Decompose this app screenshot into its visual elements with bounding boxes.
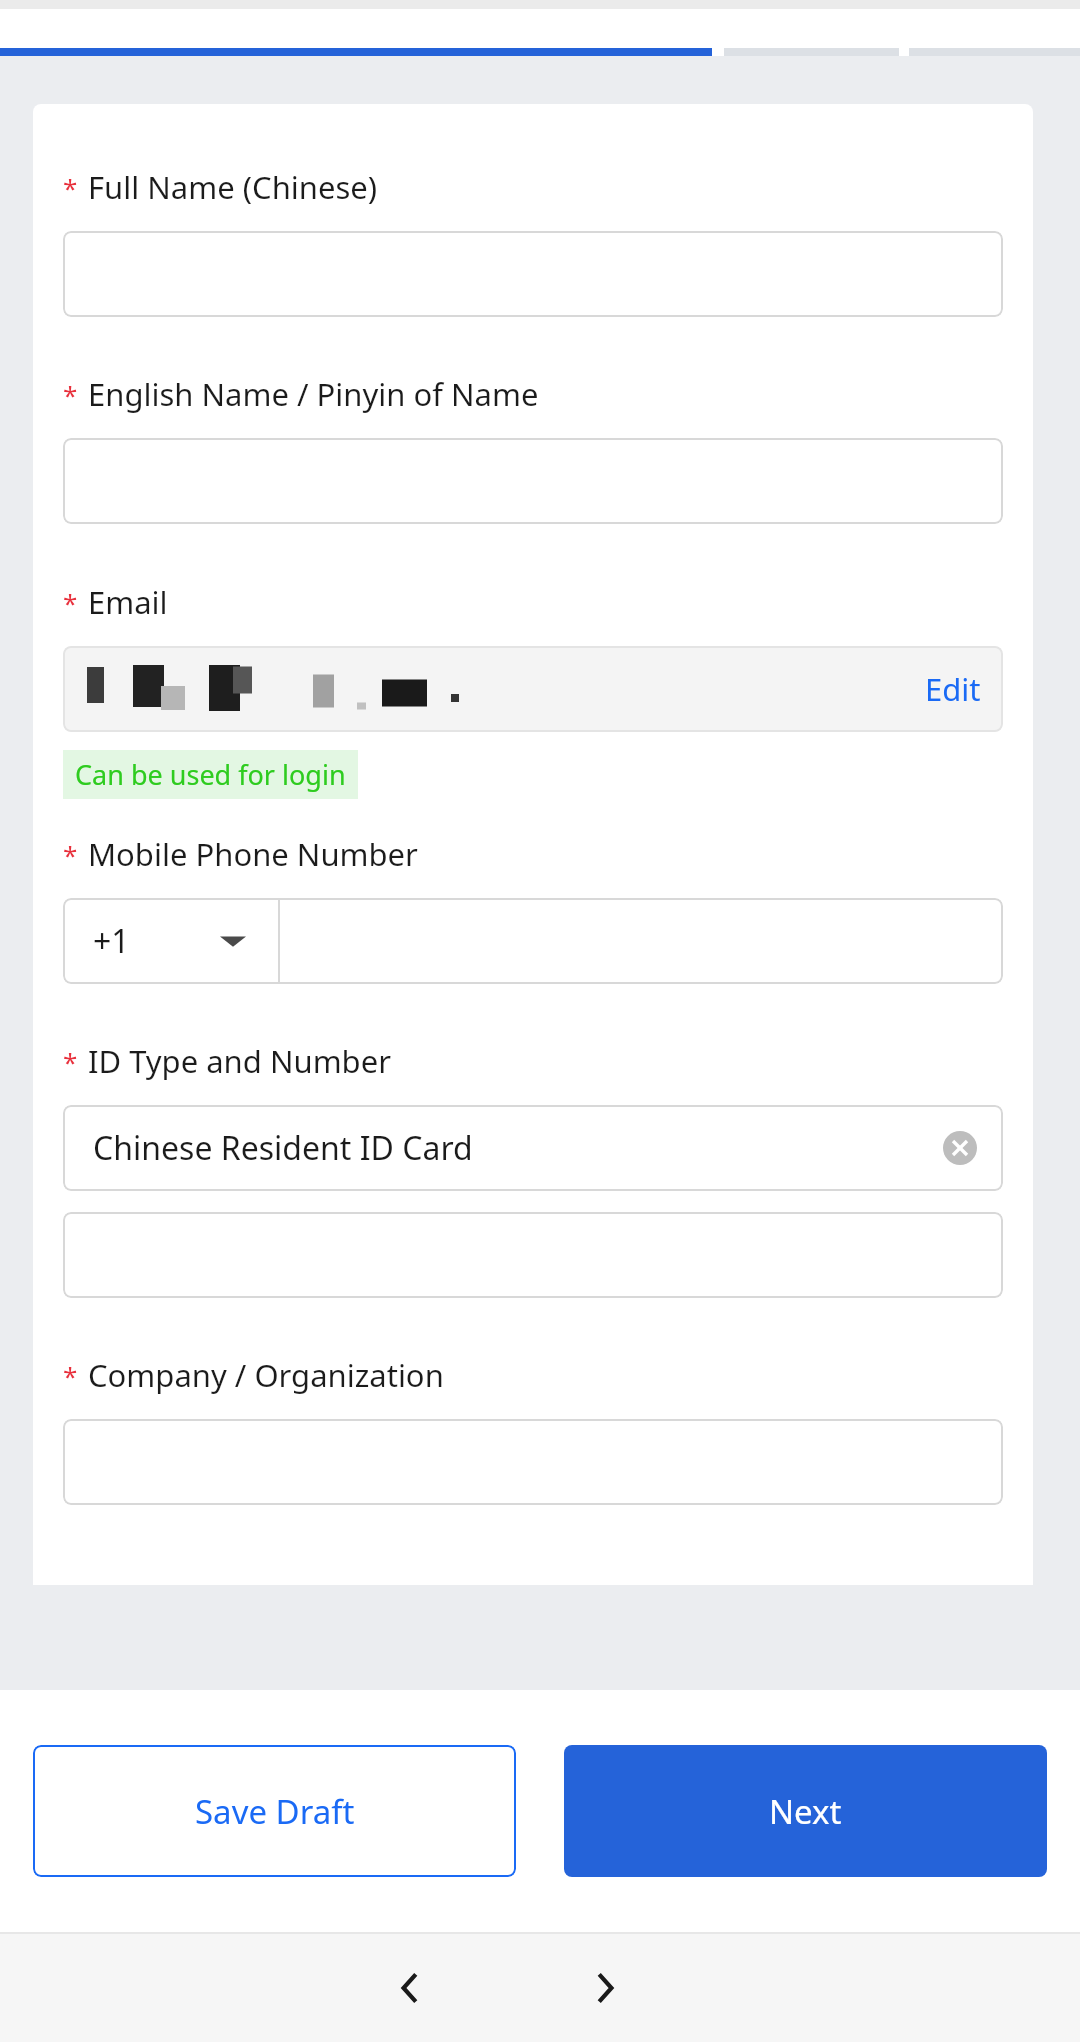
- staticText: *: [63, 585, 78, 620]
- button[interactable]: [280, 898, 1003, 984]
- staticText: +1: [93, 919, 130, 963]
- button[interactable]: [63, 1212, 1003, 1298]
- button[interactable]: [63, 1419, 1003, 1505]
- staticText: Can be used for login: [75, 756, 346, 793]
- staticText: *: [63, 1044, 78, 1079]
- button[interactable]: Edit: [63, 646, 1003, 732]
- staticText: *: [63, 1358, 78, 1393]
- staticText: *: [63, 837, 78, 872]
- staticText: Next: [769, 1789, 842, 1834]
- button[interactable]: +1: [63, 898, 278, 984]
- staticText: Edit: [925, 668, 981, 710]
- staticText: ID Type and Number: [88, 1040, 391, 1082]
- button[interactable]: Back: [375, 1953, 445, 2023]
- staticText: Chinese Resident ID Card: [93, 1126, 473, 1170]
- button[interactable]: [63, 438, 1003, 524]
- button[interactable]: Clear: [943, 1131, 977, 1165]
- staticText: Full Name (Chinese): [88, 166, 378, 208]
- button[interactable]: Next: [564, 1745, 1047, 1877]
- button[interactable]: Save Draft: [33, 1745, 516, 1877]
- staticText: English Name / Pinyin of Name: [88, 373, 539, 415]
- staticText: *: [63, 377, 78, 412]
- button[interactable]: Chinese Resident ID Card: [63, 1105, 1003, 1191]
- staticText: *: [63, 170, 78, 205]
- staticText: Company / Organization: [88, 1354, 444, 1396]
- button[interactable]: Forward: [570, 1953, 640, 2023]
- staticText: Mobile Phone Number: [88, 833, 418, 875]
- button[interactable]: [63, 231, 1003, 317]
- staticText: Email: [88, 581, 168, 623]
- staticText: Save Draft: [195, 1789, 355, 1834]
